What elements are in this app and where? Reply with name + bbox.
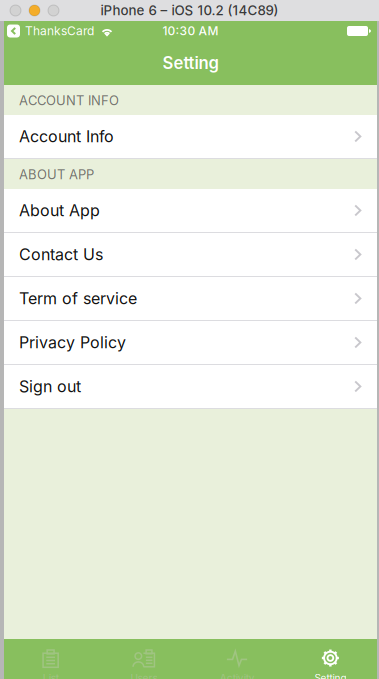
button[interactable]: Account Info [4,115,377,159]
button[interactable]: Contact Us [4,233,377,277]
staticText: iPhone 6 – iOS 10.2 (14C89) [100,2,278,18]
staticText: ACCOUNT INFO [19,93,119,108]
staticText: Term of service [19,289,137,308]
staticText: Setting [162,53,218,73]
staticText: ABOUT APP [19,167,94,182]
staticText: ThanksCard [25,24,94,38]
button[interactable]: Back to ThanksCard [4,21,96,41]
button[interactable]: Privacy Policy [4,321,377,365]
staticText: Account Info [19,127,114,146]
staticText: Activity [220,672,255,679]
button[interactable]: Activity [190,639,284,679]
staticText: Setting [314,672,346,679]
button[interactable]: Users [97,639,190,679]
button[interactable]: Term of service [4,277,377,321]
button[interactable]: About App [4,189,377,233]
staticText: Contact Us [19,245,103,264]
staticText: About App [19,201,100,220]
staticText: List [43,672,59,679]
staticText: 10:30 AM [162,24,218,38]
staticText: Users [130,672,157,679]
button[interactable]: List [4,639,97,679]
button[interactable]: Sign out [4,365,377,409]
staticText: Sign out [19,377,81,396]
button[interactable]: Setting [284,639,377,679]
staticText: Privacy Policy [19,333,126,352]
